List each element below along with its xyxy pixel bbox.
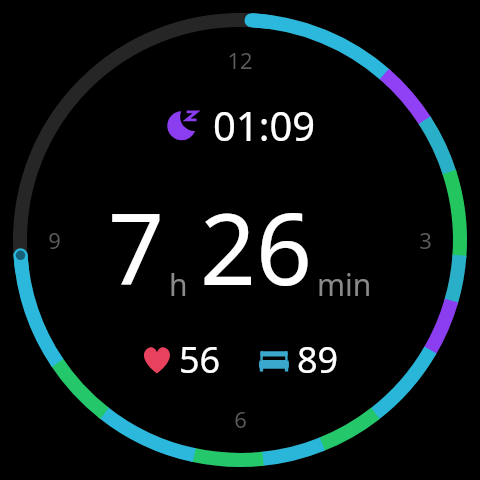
button[interactable]: Sleep bbox=[159, 96, 322, 154]
button[interactable]: 7 bbox=[104, 180, 376, 313]
staticText: 9 bbox=[48, 225, 61, 255]
button[interactable]: Sleep score bbox=[253, 331, 343, 388]
other: Sleep score bbox=[257, 343, 291, 377]
staticText: min bbox=[317, 264, 372, 305]
staticText: 56 bbox=[179, 335, 221, 384]
staticText: 89 bbox=[297, 335, 339, 384]
other: Sleep bbox=[165, 106, 203, 144]
button[interactable]: Heart rate bbox=[137, 331, 225, 388]
staticText: h bbox=[169, 264, 188, 305]
staticText: 6 bbox=[234, 404, 247, 434]
staticText: 7 bbox=[108, 180, 165, 313]
staticText: 01:09 bbox=[213, 98, 316, 152]
staticText: 3 bbox=[419, 225, 432, 255]
other: Heart rate bbox=[141, 344, 173, 376]
staticText: 12 bbox=[227, 45, 253, 75]
staticText: 26 bbox=[200, 180, 313, 313]
